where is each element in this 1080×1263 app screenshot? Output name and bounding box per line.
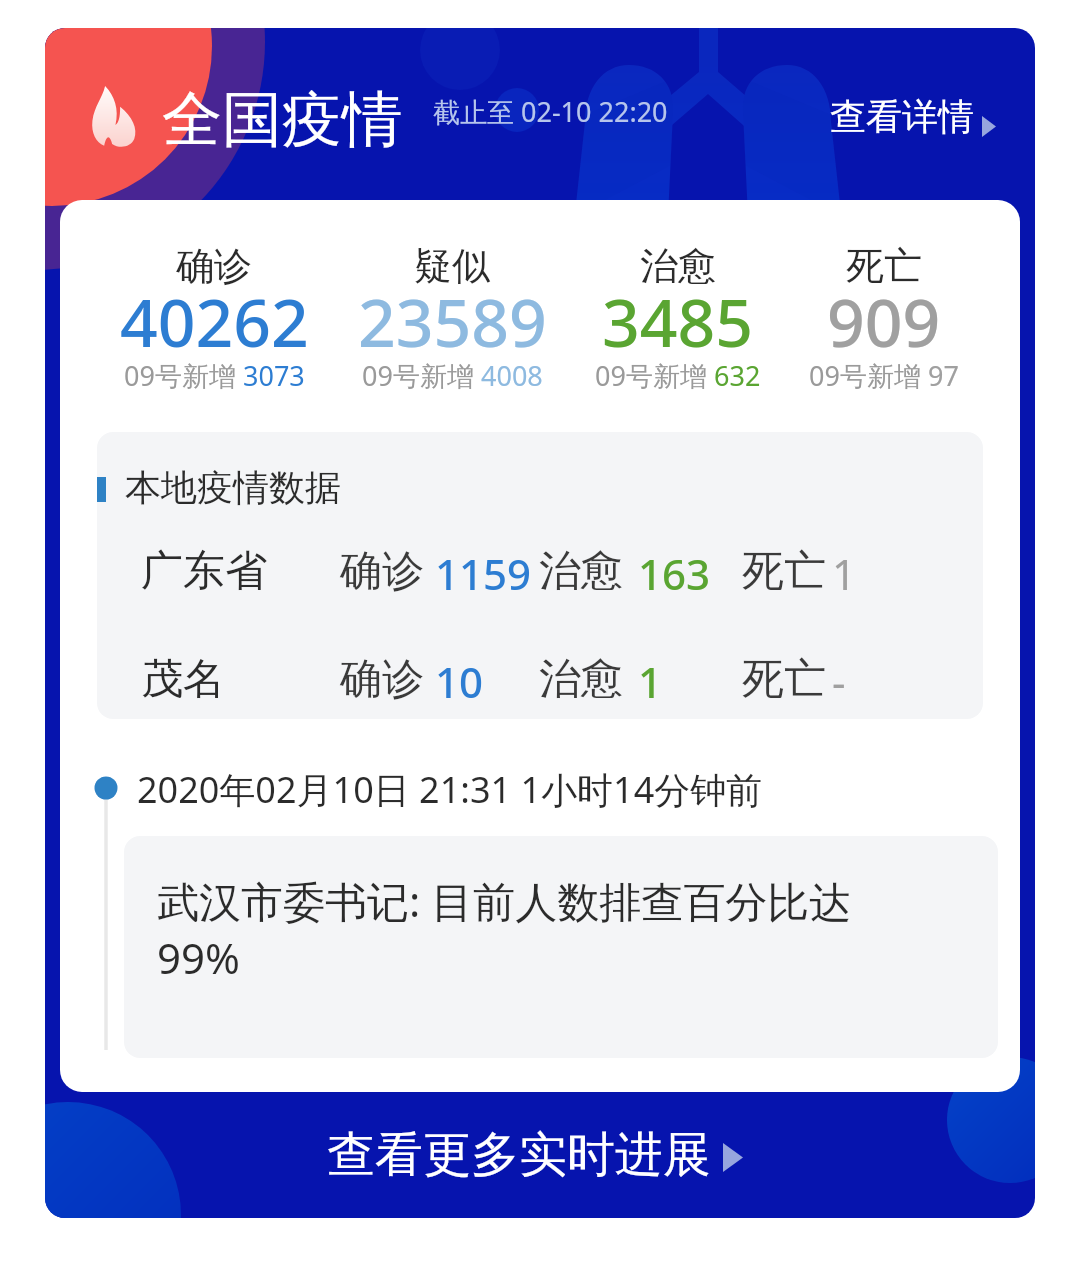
staticText: 09号新增 [595, 357, 714, 394]
staticText: 查看详情 [830, 94, 974, 139]
staticText: 查看更多实时进展 [327, 1125, 711, 1185]
staticText: 治愈 [539, 545, 623, 598]
staticText: 632 [714, 357, 761, 394]
button[interactable]: 查看详情 [815, 66, 1014, 166]
staticText: 死亡 [846, 242, 922, 290]
staticText: 163 [638, 545, 711, 602]
staticText: 广东省 [141, 545, 267, 598]
staticText: 治愈 [640, 242, 716, 290]
button[interactable]: 查看更多实时进展 [45, 1092, 1035, 1218]
staticText: 确诊 [176, 242, 252, 290]
button[interactable]: 广东省 [97, 531, 983, 637]
staticText: 确诊 [340, 545, 424, 598]
staticText: 武汉市委书记: 目前人数排查百分比达 99% [157, 872, 887, 986]
staticText: 1159 [435, 545, 532, 602]
staticText: 治愈 [539, 653, 623, 706]
staticText: 1 [638, 653, 663, 710]
staticText: 1 [832, 545, 857, 602]
staticText: 2020年02月10日 21:31 1小时14分钟前 [137, 765, 763, 814]
staticText: 10 [435, 653, 484, 710]
staticText: 茂名 [141, 653, 225, 706]
other: Epidemic [91, 86, 138, 147]
staticText: 09号新增 [124, 357, 243, 394]
staticText: 截止至 02-10 22:20 [433, 93, 668, 130]
staticText: 4008 [481, 357, 543, 394]
staticText: 死亡 [742, 653, 826, 706]
staticText: 疑似 [414, 242, 490, 290]
staticText: 909 [827, 276, 941, 366]
staticText: 09号新增 [362, 357, 481, 394]
staticText: - [832, 653, 846, 710]
staticText: 23589 [358, 276, 547, 366]
staticText: 确诊 [340, 653, 424, 706]
staticText: 3485 [602, 276, 754, 366]
staticText: 本地疫情数据 [125, 465, 341, 510]
button[interactable]: 茂名 [97, 639, 983, 719]
staticText: 3073 [243, 357, 305, 394]
staticText: 97 [928, 357, 959, 394]
staticText: 全国疫情 [162, 82, 402, 158]
staticText: 40262 [120, 276, 309, 366]
button[interactable]: Epidemic [85, 66, 725, 166]
staticText: 09号新增 [809, 357, 928, 394]
staticText: 死亡 [742, 545, 826, 598]
button[interactable]: 武汉市委书记: 目前人数排查百分比达 99% [124, 836, 998, 1058]
